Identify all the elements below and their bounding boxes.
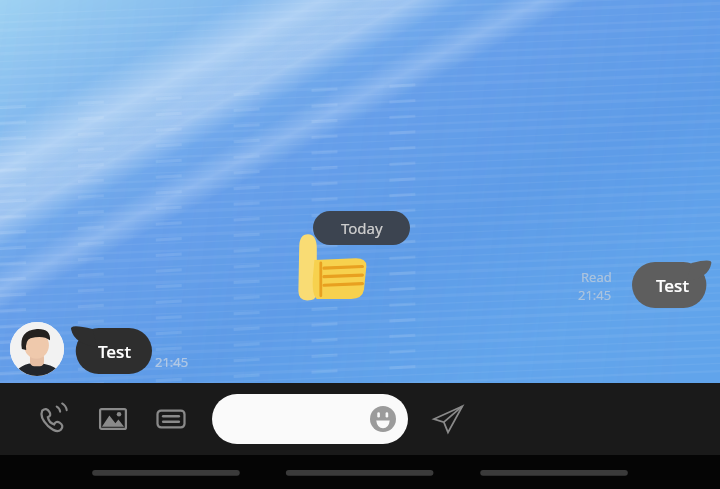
button[interactable]: Contact avatar bbox=[10, 322, 64, 376]
staticText: 21:45 bbox=[155, 353, 189, 371]
staticText: Test bbox=[98, 340, 131, 363]
button[interactable]: Send bbox=[430, 401, 466, 437]
staticText: Read bbox=[581, 268, 612, 286]
staticText: Today bbox=[341, 218, 383, 238]
button[interactable]: Emoji bbox=[212, 394, 408, 444]
button[interactable]: Gallery bbox=[96, 402, 130, 436]
button[interactable]: Test bbox=[632, 258, 712, 308]
button[interactable]: Today bbox=[313, 211, 410, 245]
button[interactable]: Voice call bbox=[36, 402, 70, 436]
button[interactable]: Thumbs up sticker bbox=[292, 224, 372, 302]
button[interactable]: Test bbox=[70, 324, 152, 374]
staticText: 21:45 bbox=[578, 286, 612, 304]
button[interactable]: Emoji bbox=[370, 406, 396, 432]
button[interactable]: More options bbox=[154, 402, 188, 436]
staticText: Test bbox=[656, 274, 689, 297]
